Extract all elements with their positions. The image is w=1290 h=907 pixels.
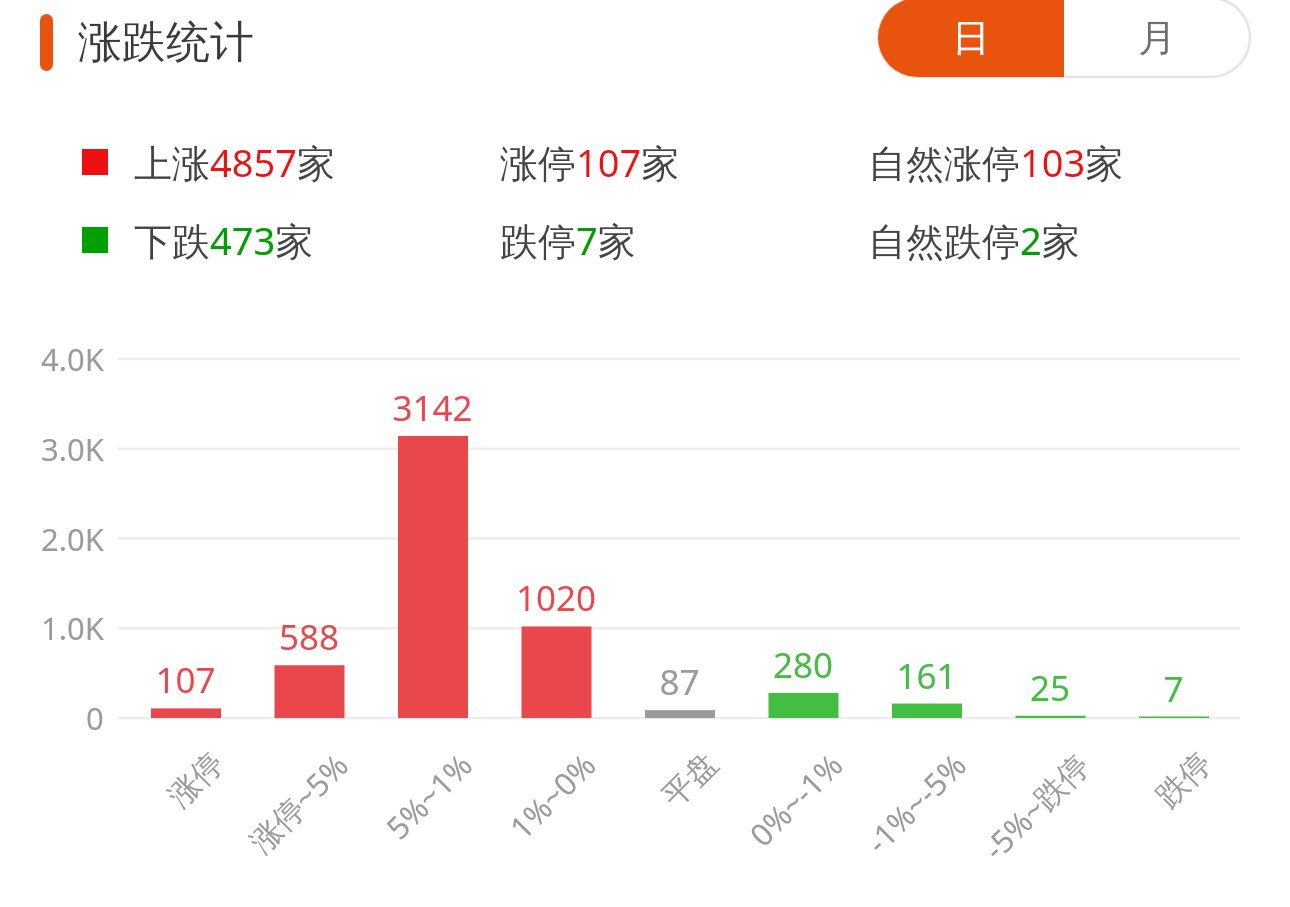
button[interactable]: 涨跌统计 xyxy=(30,4,330,78)
button[interactable]: 月 xyxy=(1065,0,1250,77)
button[interactable]: 日 xyxy=(878,0,1065,77)
